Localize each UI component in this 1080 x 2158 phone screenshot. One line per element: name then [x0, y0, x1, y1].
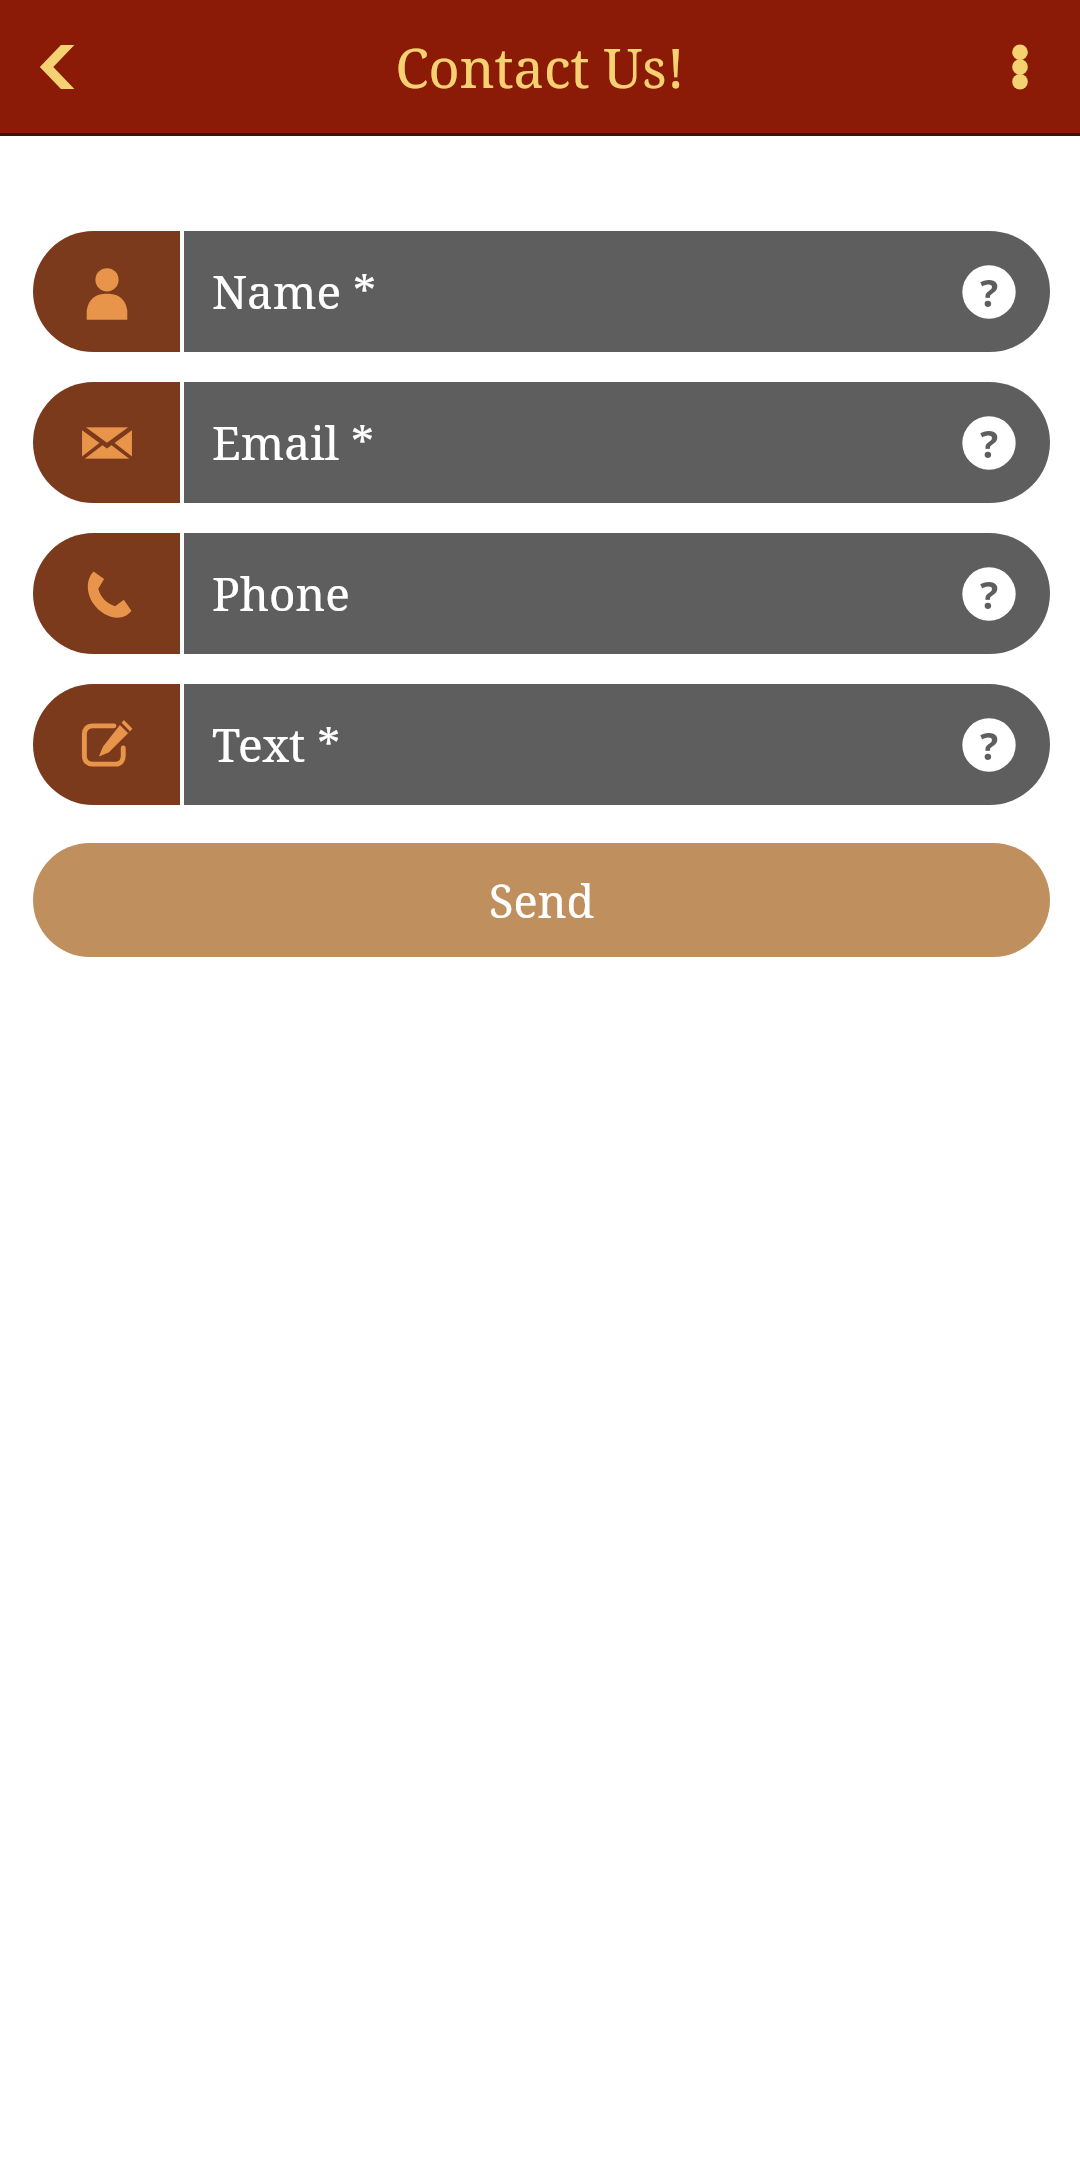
staticText: Phone	[212, 562, 350, 625]
button[interactable]: Email *	[33, 382, 1050, 503]
staticText: ?	[980, 568, 999, 620]
button[interactable]: Help about Text *	[960, 716, 1018, 774]
staticText: Contact Us!	[395, 30, 685, 104]
staticText: Send	[489, 870, 595, 931]
staticText: Text *	[212, 713, 341, 776]
button[interactable]: Help about Phone	[960, 565, 1018, 623]
button[interactable]: Send	[33, 843, 1050, 957]
staticText: ?	[980, 417, 999, 469]
button[interactable]: Back	[12, 19, 108, 115]
staticText: ?	[980, 719, 999, 771]
button[interactable]: Help about Email *	[960, 414, 1018, 472]
button[interactable]: Text *	[33, 684, 1050, 805]
button[interactable]: More options	[972, 19, 1068, 115]
button[interactable]: Name *	[33, 231, 1050, 352]
staticText: ?	[980, 266, 999, 318]
staticText: Name *	[212, 260, 377, 323]
button[interactable]: Phone	[33, 533, 1050, 654]
button[interactable]: Help about Name *	[960, 263, 1018, 321]
staticText: Email *	[212, 411, 374, 474]
